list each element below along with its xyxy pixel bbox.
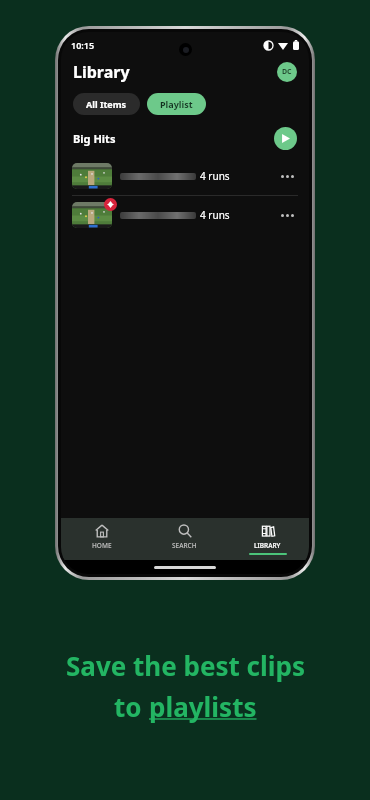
staticText: DC — [282, 67, 292, 77]
staticText: 4 runs — [200, 208, 230, 222]
button[interactable]: LIBRARY — [226, 518, 309, 560]
staticText: 10:15 — [71, 39, 95, 51]
staticText: SEARCH — [172, 541, 197, 550]
staticText: Library — [73, 61, 130, 83]
button[interactable]: 4 runs — [61, 157, 309, 195]
staticText: Big Hits — [73, 131, 116, 146]
button[interactable]: SEARCH — [143, 518, 226, 560]
staticText: playlists — [149, 689, 257, 724]
button[interactable]: All Items — [73, 93, 140, 115]
staticText: All Items — [86, 98, 127, 110]
button[interactable]: More options — [276, 165, 298, 187]
button[interactable]: Playlist — [147, 93, 206, 115]
button[interactable]: HOME — [61, 518, 143, 560]
button[interactable]: More options — [276, 204, 298, 226]
staticText: LIBRARY — [254, 541, 281, 550]
staticText: to — [114, 689, 149, 724]
staticText: 4 runs — [200, 169, 230, 183]
staticText: HOME — [92, 541, 112, 550]
button[interactable]: Profile — [277, 62, 297, 82]
staticText: Save the best clips — [66, 648, 305, 683]
staticText: Playlist — [160, 98, 193, 110]
button[interactable]: 4 runs — [61, 196, 309, 234]
button[interactable]: Play all — [274, 127, 297, 150]
